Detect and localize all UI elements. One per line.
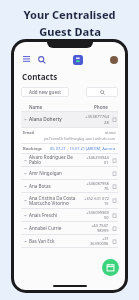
button[interactable]: Expand [21, 112, 118, 127]
button[interactable]: Expand [21, 167, 118, 179]
staticText: Bookings [23, 146, 42, 152]
button[interactable]: Add new guest [21, 87, 69, 97]
button[interactable]: Delete contact [111, 170, 118, 177]
staticText: 28 [104, 120, 109, 126]
staticText: 98999 [97, 228, 109, 233]
staticText: Alvaro Rodriguez De Pablo [29, 154, 86, 166]
button[interactable]: Delete contact [111, 116, 118, 123]
button[interactable]: Expand [21, 154, 29, 166]
staticText: +44 7547 [91, 223, 109, 228]
button[interactable]: Expand [21, 235, 118, 247]
button[interactable]: Expand [21, 193, 118, 208]
staticText: Bas Van Eck [29, 238, 90, 244]
button[interactable]: Profile [110, 56, 118, 64]
button[interactable]: App logo [73, 55, 83, 65]
button[interactable]: Delete contact [111, 225, 118, 232]
staticText: +346293944 [86, 155, 109, 160]
staticText: +346087958 [86, 181, 109, 186]
staticText: +31 [102, 236, 109, 241]
staticText: Annabel Currie [29, 225, 91, 231]
button[interactable]: Delete contact [111, 212, 118, 219]
staticText: Ana Botas [29, 183, 86, 189]
staticText: 15 [104, 201, 109, 206]
button[interactable]: Expand [21, 209, 29, 221]
button[interactable]: Search [36, 54, 47, 65]
staticText: Alana Doherty [29, 116, 62, 123]
staticText: alana [105, 130, 116, 136]
button[interactable]: Expand [21, 167, 29, 179]
button[interactable]: Expand [21, 209, 118, 221]
button[interactable]: Expand [21, 193, 29, 208]
staticText: Guest Data [39, 24, 101, 39]
button[interactable]: Expand [21, 112, 29, 127]
staticText: +336099969 [86, 210, 109, 215]
button[interactable]: Expand [21, 222, 29, 234]
button[interactable]: Expand [21, 235, 29, 247]
staticText: pa7ccewDrSioShwgbig-unol.arilnrb.com [44, 136, 116, 141]
button[interactable]: 05.07.21 - 13.07.21 JARDIM, Aurora [50, 146, 116, 151]
button[interactable]: Menu [21, 54, 32, 65]
button[interactable]: Search contacts [86, 87, 118, 97]
button[interactable]: Expand [21, 180, 118, 192]
staticText: Phone [94, 104, 108, 110]
staticText: 50 [104, 215, 109, 220]
staticText: Add new guest [29, 89, 61, 95]
staticText: Email [23, 130, 35, 136]
staticText: 01 [104, 160, 109, 165]
staticText: Name [29, 104, 43, 110]
staticText: Ana Cristina Da Costa Marcucho Vitorino [29, 195, 84, 207]
button[interactable]: Delete contact [111, 183, 118, 190]
button[interactable]: Delete contact [111, 197, 118, 204]
button[interactable]: Expand [21, 222, 118, 234]
button[interactable]: Expand [21, 180, 29, 192]
staticText: +352 631 072 [84, 196, 109, 201]
staticText: 76 [104, 186, 109, 191]
staticText: Your Centralised [23, 7, 116, 22]
staticText: Contacts [22, 71, 58, 82]
button[interactable]: New booking [102, 259, 119, 276]
button[interactable]: Delete contact [111, 238, 118, 245]
staticText: Anais Freschi [29, 212, 86, 218]
button[interactable]: Expand [21, 154, 118, 166]
staticText: +353877764 [85, 114, 109, 120]
button[interactable]: Delete contact [111, 157, 118, 164]
staticText: Amr Ningolgan [29, 170, 109, 176]
staticText: 36390096 [90, 241, 109, 246]
